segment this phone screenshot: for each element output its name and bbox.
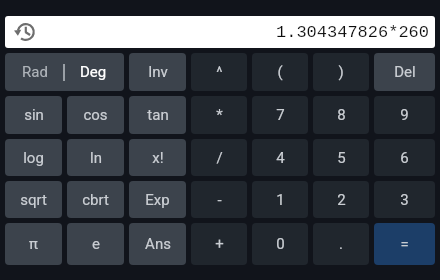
staticText: ): [338, 63, 344, 81]
button[interactable]: /: [191, 139, 247, 176]
staticText: .: [339, 235, 343, 253]
button[interactable]: ^: [191, 53, 247, 91]
staticText: 8: [337, 106, 346, 124]
button[interactable]: 8: [313, 96, 369, 134]
button[interactable]: 5: [313, 139, 369, 176]
staticText: 6: [400, 149, 409, 167]
button[interactable]: tan: [129, 96, 186, 134]
staticText: Exp: [145, 191, 170, 209]
staticText: 1.304347826*260: [276, 23, 430, 42]
staticText: Del: [394, 63, 416, 81]
staticText: 7: [276, 106, 285, 124]
button[interactable]: 3: [374, 181, 435, 218]
button[interactable]: History: [12, 20, 36, 44]
button[interactable]: 9: [374, 96, 435, 134]
staticText: ^: [216, 63, 223, 81]
button[interactable]: sin: [5, 96, 62, 134]
button[interactable]: .: [313, 223, 369, 265]
button[interactable]: 4: [252, 139, 308, 176]
staticText: /: [216, 149, 223, 167]
staticText: 9: [400, 106, 409, 124]
button[interactable]: cos: [67, 96, 124, 134]
button[interactable]: Exp: [129, 181, 186, 218]
button[interactable]: 1: [252, 181, 308, 218]
staticText: sin: [24, 106, 44, 124]
button[interactable]: x!: [129, 139, 186, 176]
button[interactable]: Del: [374, 53, 435, 91]
staticText: 5: [337, 149, 346, 167]
button[interactable]: 0: [252, 223, 308, 265]
staticText: e: [92, 235, 100, 253]
staticText: 2: [337, 191, 346, 209]
button[interactable]: 6: [374, 139, 435, 176]
button[interactable]: sqrt: [5, 181, 62, 218]
staticText: 4: [276, 149, 285, 167]
button[interactable]: -: [191, 181, 247, 218]
button[interactable]: e: [67, 223, 124, 265]
staticText: x!: [152, 149, 164, 167]
button[interactable]: 2: [313, 181, 369, 218]
button[interactable]: =: [374, 223, 435, 265]
staticText: 3: [400, 191, 409, 209]
button[interactable]: (: [252, 53, 308, 91]
staticText: cos: [83, 106, 108, 124]
staticText: Ans: [145, 235, 171, 253]
button[interactable]: 7: [252, 96, 308, 134]
button[interactable]: π: [5, 223, 62, 265]
button[interactable]: Ans: [129, 223, 186, 265]
button[interactable]: ): [313, 53, 369, 91]
staticText: log: [23, 149, 44, 167]
button[interactable]: Inv: [129, 53, 186, 91]
button[interactable]: cbrt: [67, 181, 124, 218]
staticText: ln: [90, 149, 102, 167]
staticText: Deg: [80, 63, 107, 81]
staticText: Inv: [148, 63, 168, 81]
staticText: π: [29, 235, 38, 253]
staticText: +: [215, 235, 224, 253]
button[interactable]: *: [191, 96, 247, 134]
button[interactable]: log: [5, 139, 62, 176]
staticText: -: [217, 191, 222, 209]
staticText: *: [216, 106, 223, 124]
button[interactable]: Rad: [5, 53, 124, 91]
staticText: Rad: [22, 63, 48, 81]
staticText: (: [277, 63, 283, 81]
staticText: 0: [276, 235, 285, 253]
staticText: sqrt: [20, 191, 47, 209]
staticText: cbrt: [82, 191, 109, 209]
staticText: =: [400, 235, 409, 253]
button[interactable]: +: [191, 223, 247, 265]
button[interactable]: ln: [67, 139, 124, 176]
staticText: 1: [276, 191, 285, 209]
staticText: tan: [147, 106, 169, 124]
